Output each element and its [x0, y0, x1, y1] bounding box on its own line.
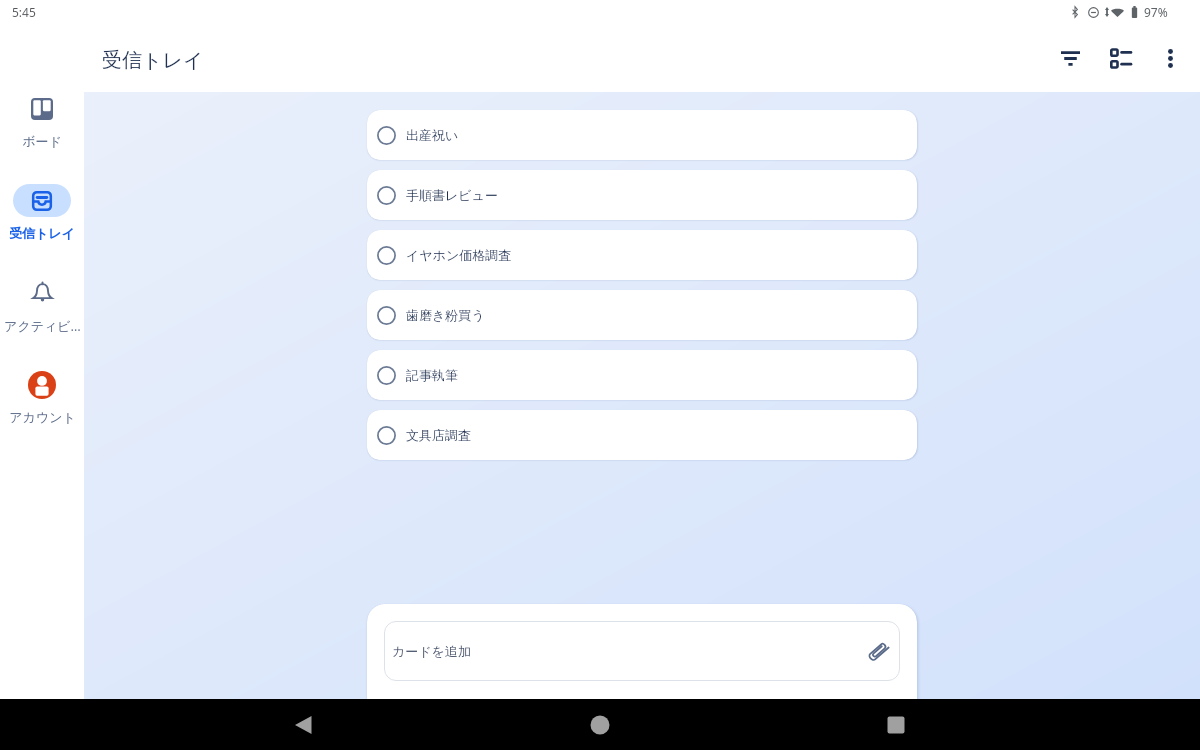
button[interactable]: 受信トレイ — [0, 184, 84, 276]
button[interactable]: 手順書レビュー — [367, 170, 917, 220]
button[interactable]: More options — [1146, 34, 1194, 82]
staticText: 歯磨き粉買う — [406, 307, 485, 323]
staticText: 受信トレイ — [102, 48, 204, 73]
button[interactable]: 歯磨き粉買う — [367, 290, 917, 340]
button[interactable]: アカウント — [0, 368, 84, 460]
staticText: 手順書レビュー — [406, 187, 498, 203]
staticText: 受信トレイ — [9, 225, 75, 241]
button[interactable]: Back — [255, 699, 351, 750]
staticText: 97% — [1144, 4, 1168, 20]
staticText: イヤホン価格調査 — [406, 247, 512, 263]
staticText: アクティビ… — [4, 317, 81, 335]
button[interactable]: イヤホン価格調査 — [367, 230, 917, 280]
button[interactable]: Filter — [1046, 34, 1094, 82]
staticText: 文具店調査 — [406, 427, 471, 443]
button[interactable]: View options — [1096, 34, 1144, 82]
staticText: 出産祝い — [406, 127, 459, 143]
staticText: ボード — [22, 133, 62, 149]
button[interactable]: Recent apps — [848, 699, 944, 750]
button[interactable]: 文具店調査 — [367, 410, 917, 460]
button[interactable]: Attach file — [861, 634, 895, 668]
staticText: カードを追加 — [392, 643, 471, 659]
button[interactable]: アクティビ… — [0, 276, 84, 368]
button[interactable]: 出産祝い — [367, 110, 917, 160]
button[interactable]: カードを追加 — [384, 621, 900, 681]
button[interactable]: Home — [552, 700, 648, 750]
staticText: アカウント — [9, 409, 76, 425]
staticText: 記事執筆 — [406, 367, 458, 383]
staticText: 5:45 — [12, 4, 36, 20]
button[interactable]: 記事執筆 — [367, 350, 917, 400]
button[interactable]: ボード — [0, 92, 84, 184]
